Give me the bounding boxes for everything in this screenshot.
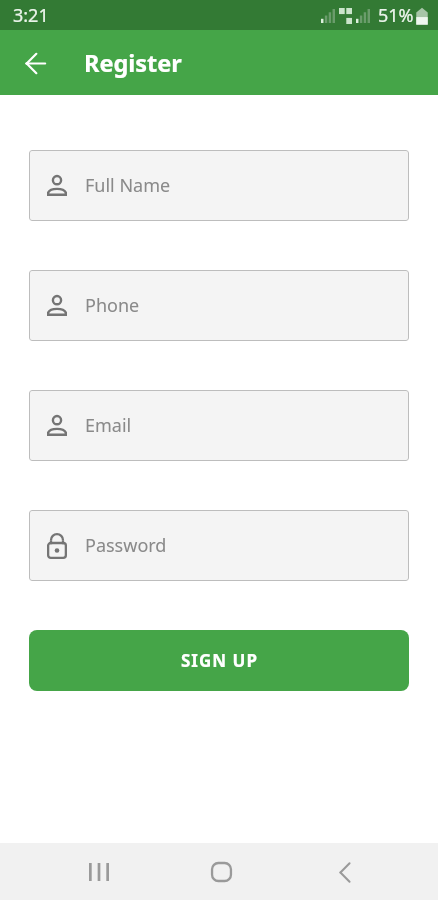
staticText: SIGN UP xyxy=(181,649,258,672)
staticText: 51% xyxy=(378,3,414,28)
staticText: Full Name xyxy=(85,173,171,198)
staticText: Email xyxy=(85,413,132,438)
button[interactable]: Recent apps xyxy=(74,843,123,900)
staticText: Phone xyxy=(85,293,140,318)
staticText: Password xyxy=(85,533,167,558)
button[interactable]: Back xyxy=(320,843,369,900)
button[interactable]: Password xyxy=(29,510,409,581)
staticText: 3:21 xyxy=(13,3,49,28)
button[interactable]: Full Name xyxy=(29,150,409,221)
button[interactable]: SIGN UP xyxy=(29,630,409,691)
button[interactable]: Email xyxy=(29,390,409,461)
button[interactable]: Phone xyxy=(29,270,409,341)
button[interactable]: Home xyxy=(197,843,246,900)
staticText: Register xyxy=(84,47,182,79)
button[interactable]: Back xyxy=(15,43,55,83)
